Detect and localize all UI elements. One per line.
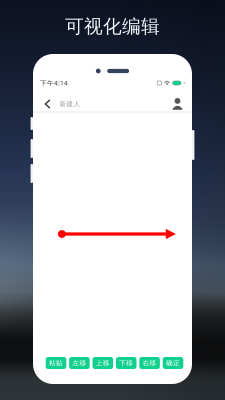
staticText: 右移	[143, 359, 157, 367]
staticText: 下移	[119, 359, 133, 367]
staticText: 粘贴	[49, 359, 63, 367]
staticText: 上移	[96, 359, 110, 367]
staticText: 下午4:14	[40, 79, 68, 87]
button[interactable]: 下移	[116, 357, 136, 369]
button[interactable]: Back	[40, 97, 54, 111]
staticText: 确定	[166, 359, 180, 367]
staticText: 可视化编辑	[65, 15, 160, 38]
staticText: 新建人	[59, 100, 80, 108]
button[interactable]: Account	[170, 97, 184, 111]
button[interactable]: 左移	[69, 357, 90, 369]
button[interactable]: 上移	[92, 357, 113, 369]
staticText: 左移	[72, 359, 86, 367]
button[interactable]: 右移	[139, 357, 160, 369]
button[interactable]: 粘贴	[46, 357, 66, 369]
button[interactable]: 确定	[163, 357, 183, 369]
